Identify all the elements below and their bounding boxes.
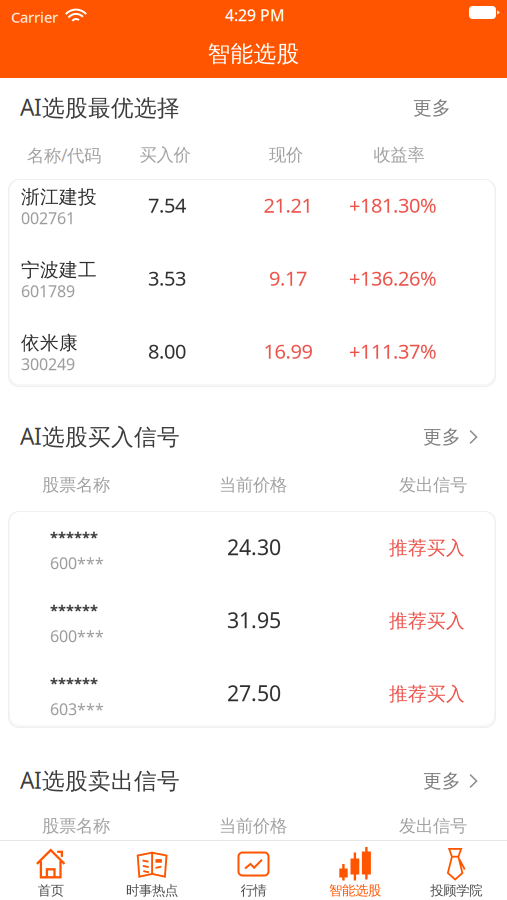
button[interactable]: 依米康 xyxy=(10,315,494,388)
staticText: 7.54 xyxy=(148,192,186,218)
staticText: 600*** xyxy=(50,625,104,647)
staticText: 21.21 xyxy=(263,192,312,218)
staticText: 603*** xyxy=(50,698,104,720)
button[interactable]: 更多 xyxy=(359,93,451,123)
staticText: 31.95 xyxy=(227,606,281,634)
staticText: 更多 xyxy=(423,425,461,448)
button[interactable]: 更多 xyxy=(386,766,478,796)
staticText: 推荐买入 xyxy=(389,682,465,705)
staticText: 002761 xyxy=(21,207,75,229)
staticText: 投顾学院 xyxy=(430,882,482,899)
staticText: 发出信号 xyxy=(399,815,467,837)
staticText: +136.26% xyxy=(349,265,437,291)
staticText: 16.99 xyxy=(263,338,312,364)
staticText: 股票名称 xyxy=(42,474,110,496)
staticText: AI选股最优选择 xyxy=(20,92,180,122)
staticText: 首页 xyxy=(38,882,64,899)
staticText: 发出信号 xyxy=(399,474,467,496)
button[interactable]: ****** xyxy=(10,584,494,657)
staticText: Carrier xyxy=(11,7,58,27)
button[interactable]: 智能选股 xyxy=(304,840,406,900)
staticText: 300249 xyxy=(21,353,75,375)
button[interactable]: 宁波建工 xyxy=(10,242,494,315)
staticText: 买入价 xyxy=(139,144,190,166)
button[interactable]: 更多 xyxy=(386,422,478,452)
staticText: 智能选股 xyxy=(329,882,381,899)
staticText: 9.17 xyxy=(269,265,307,291)
button[interactable]: 首页 xyxy=(0,840,101,900)
staticText: 当前价格 xyxy=(219,815,287,837)
staticText: 宁波建工 xyxy=(21,258,97,281)
staticText: 智能选股 xyxy=(207,40,299,68)
staticText: 3.53 xyxy=(148,265,186,291)
staticText: 更多 xyxy=(423,769,461,792)
staticText: 更多 xyxy=(413,96,451,119)
staticText: 收益率 xyxy=(373,144,424,166)
staticText: 依米康 xyxy=(21,331,78,354)
staticText: 行情 xyxy=(240,882,266,899)
staticText: 推荐买入 xyxy=(389,536,465,559)
staticText: 当前价格 xyxy=(219,474,287,496)
staticText: 8.00 xyxy=(148,338,186,364)
button[interactable]: 行情 xyxy=(203,840,304,900)
button[interactable]: 时事热点 xyxy=(101,840,203,900)
staticText: 推荐买入 xyxy=(389,609,465,632)
staticText: 名称/代码 xyxy=(27,143,101,166)
staticText: 浙江建投 xyxy=(21,185,97,208)
staticText: ****** xyxy=(50,673,98,693)
button[interactable]: 浙江建投 xyxy=(10,169,494,242)
staticText: 24.30 xyxy=(227,533,281,561)
staticText: ****** xyxy=(50,600,98,620)
staticText: 600*** xyxy=(50,552,104,574)
button[interactable]: ****** xyxy=(10,511,494,584)
staticText: 股票名称 xyxy=(42,815,110,837)
staticText: 时事热点 xyxy=(126,882,178,899)
staticText: 现价 xyxy=(269,144,303,166)
staticText: AI选股卖出信号 xyxy=(20,765,180,795)
button[interactable]: 投顾学院 xyxy=(406,840,507,900)
staticText: 4:29 PM xyxy=(225,4,285,26)
staticText: 27.50 xyxy=(227,679,281,707)
staticText: 601789 xyxy=(21,280,75,302)
button[interactable]: ****** xyxy=(10,657,494,730)
staticText: +181.30% xyxy=(349,192,437,218)
staticText: AI选股买入信号 xyxy=(20,421,180,451)
staticText: ****** xyxy=(50,527,98,547)
staticText: +111.37% xyxy=(349,338,437,364)
